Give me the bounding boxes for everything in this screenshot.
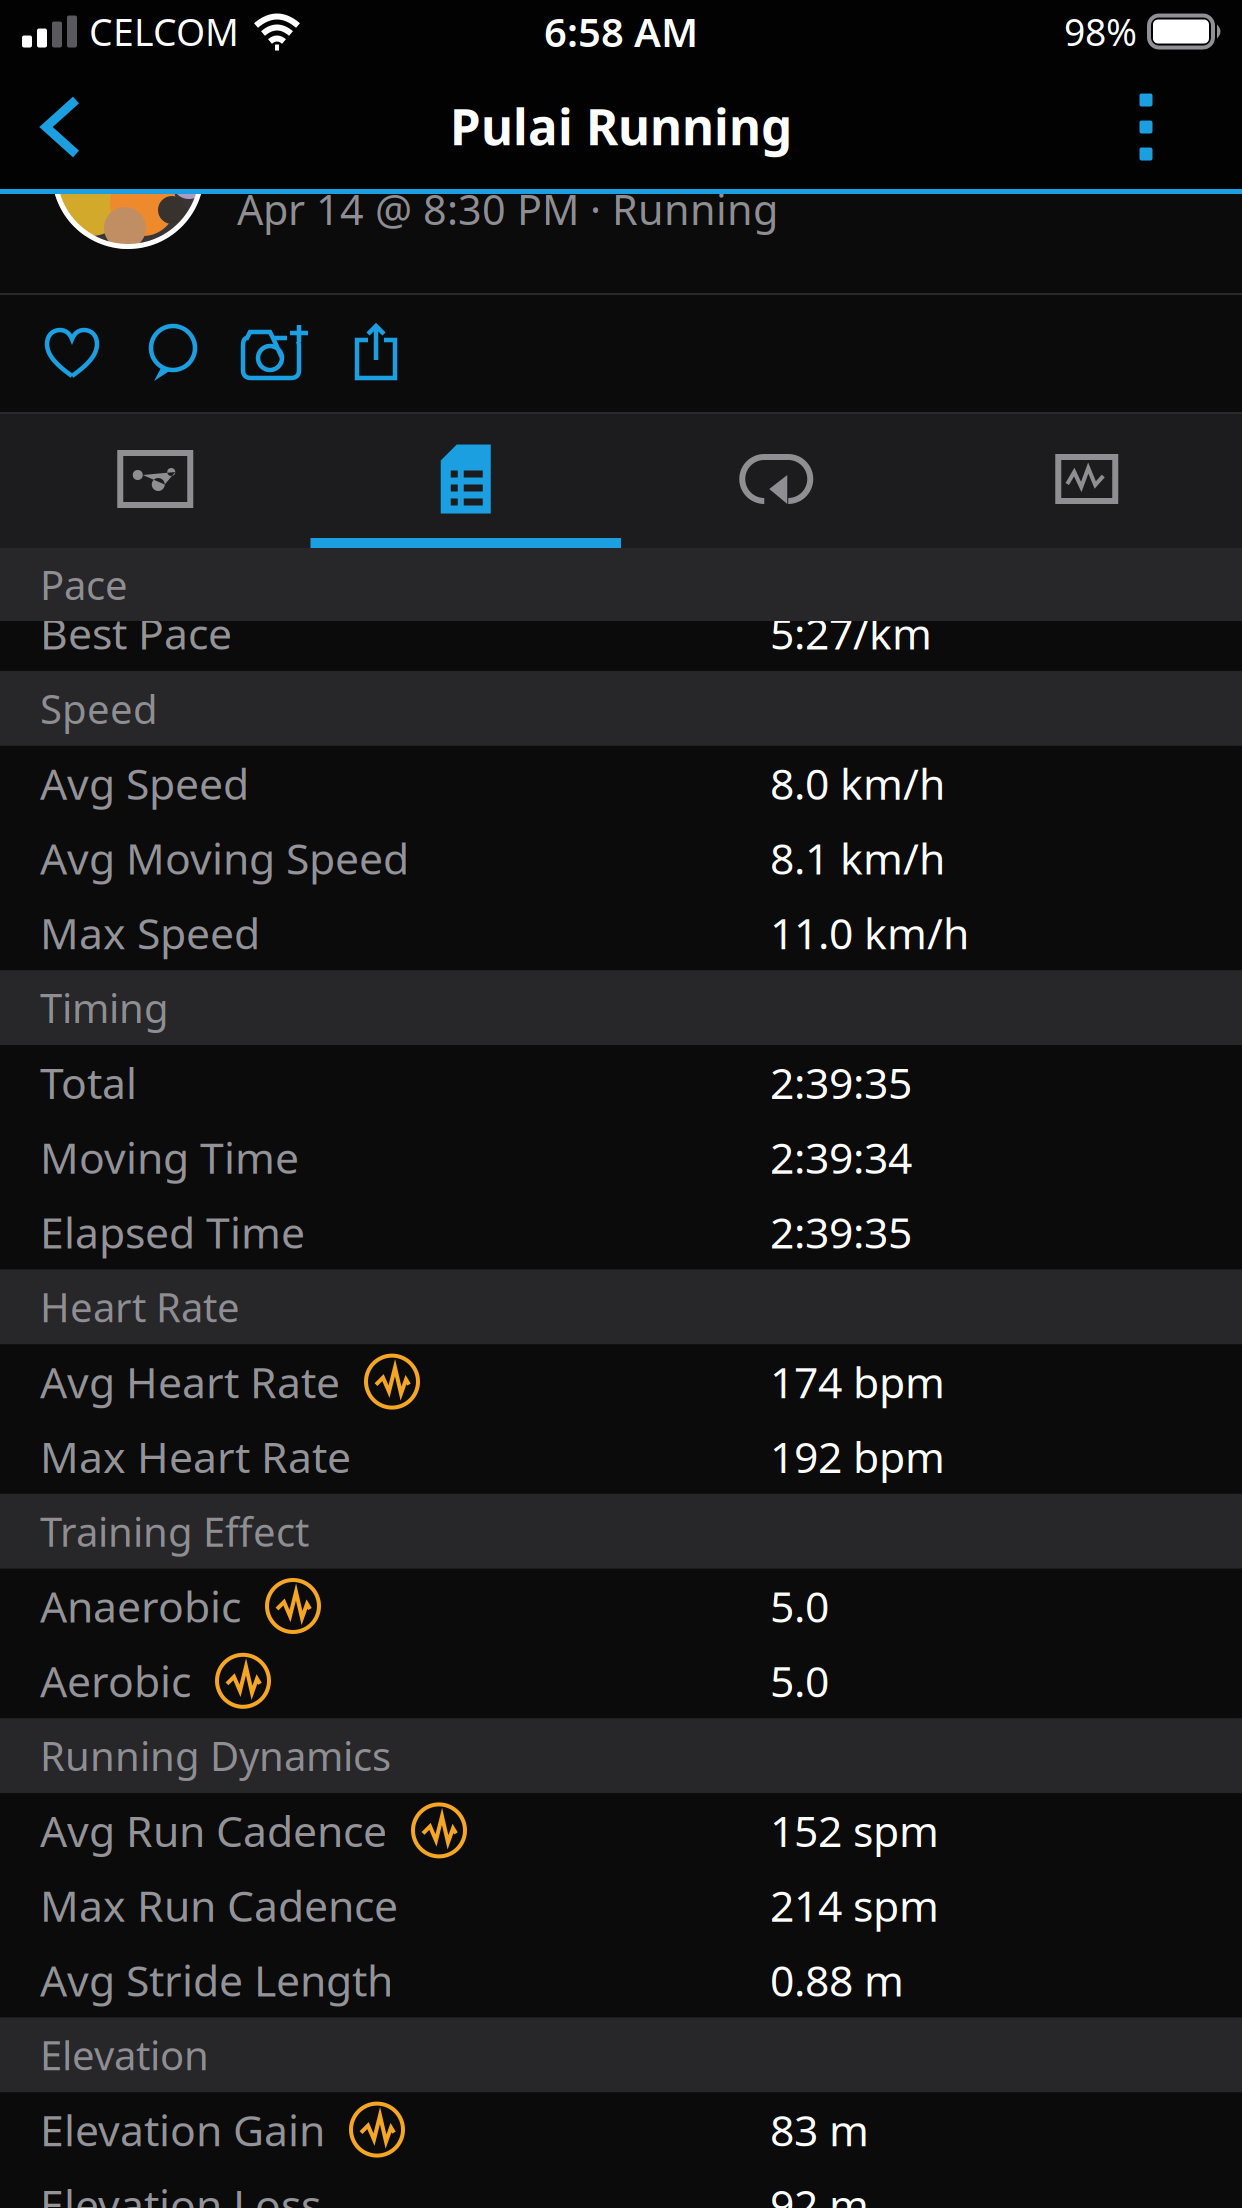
button[interactable]: [228, 297, 324, 407]
staticText: 98%: [1064, 7, 1137, 56]
button[interactable]: [932, 412, 1242, 546]
staticText: Max Heart Rate: [40, 1428, 351, 1485]
staticText: Pace: [40, 558, 128, 611]
staticText: Anaerobic: [40, 1578, 241, 1634]
staticText: 152 spm: [770, 1802, 939, 1859]
button[interactable]: [336, 297, 416, 407]
staticText: 8.0 km/h: [770, 755, 945, 812]
staticText: Avg Speed: [40, 755, 249, 812]
staticText: Pace: [40, 558, 128, 611]
staticText: Apr 14 @ 8:30 PM · Running: [237, 182, 778, 236]
staticText: Best Pace: [40, 605, 232, 661]
button[interactable]: [621, 412, 931, 546]
button[interactable]: [27, 298, 117, 408]
staticText: 5.0: [770, 1578, 829, 1634]
staticText: 6:58 AM: [544, 5, 698, 58]
staticText: 2:39:35: [770, 1054, 912, 1111]
button[interactable]: [0, 412, 310, 546]
staticText: Elapsed Time: [40, 1204, 305, 1260]
staticText: Timing: [40, 981, 169, 1034]
staticText: Avg Stride Length: [40, 1952, 393, 2008]
staticText: Elevation Loss: [40, 2176, 321, 2208]
staticText: 83 m: [770, 2101, 869, 2158]
button[interactable]: [311, 412, 621, 546]
staticText: 214 spm: [770, 1877, 939, 1934]
button[interactable]: [1106, 72, 1186, 182]
staticText: 11.0 km/h: [770, 904, 969, 961]
staticText: CELCOM: [89, 7, 239, 56]
staticText: Pulai Running: [450, 93, 792, 159]
staticText: 92 m: [770, 2176, 869, 2208]
staticText: Elevation Gain: [40, 2101, 325, 2158]
staticText: 8.1 km/h: [770, 830, 945, 886]
staticText: 0.88 m: [770, 1952, 904, 2008]
staticText: 192 bpm: [770, 1428, 945, 1485]
staticText: Max Speed: [40, 904, 260, 961]
staticText: 174 bpm: [770, 1353, 945, 1410]
staticText: Avg Moving Speed: [40, 830, 409, 886]
staticText: 2:39:34: [770, 1129, 912, 1186]
staticText: 5:27/km: [770, 605, 932, 661]
staticText: Speed: [40, 682, 158, 735]
staticText: Moving Time: [40, 1129, 299, 1186]
staticText: Avg Run Cadence: [40, 1802, 387, 1859]
staticText: Max Run Cadence: [40, 1877, 398, 1934]
staticText: 5.0: [770, 1652, 829, 1709]
button[interactable]: [128, 298, 218, 408]
staticText: 2:39:35: [770, 1204, 912, 1260]
staticText: Total: [40, 1054, 137, 1111]
staticText: Avg Heart Rate: [40, 1353, 340, 1410]
staticText: Elevation: [40, 2028, 209, 2081]
staticText: Training Effect: [40, 1505, 309, 1558]
staticText: Heart Rate: [40, 1280, 240, 1333]
staticText: Running Dynamics: [40, 1729, 391, 1782]
staticText: Aerobic: [40, 1652, 191, 1709]
button[interactable]: [12, 77, 112, 177]
